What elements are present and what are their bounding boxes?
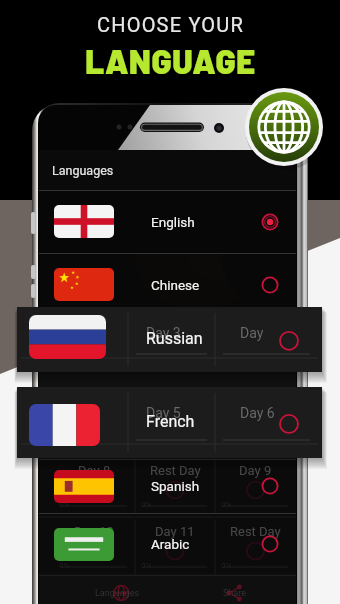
staticText: Day 6 — [239, 402, 272, 417]
staticText: LANGUAGE — [85, 41, 256, 81]
staticText: Day 5 — [159, 402, 192, 417]
staticText: Chinese — [151, 277, 200, 293]
staticText: Day 13 — [74, 585, 114, 600]
staticText: Share — [223, 588, 246, 599]
button[interactable]: Spanish — [39, 459, 296, 513]
staticText: Day 9 — [239, 463, 272, 478]
staticText: Day 8 — [78, 463, 111, 478]
staticText: Languages — [52, 163, 114, 178]
button[interactable]: Russian — [17, 307, 322, 372]
button[interactable]: Chinese — [39, 253, 296, 316]
staticText: 0% — [141, 357, 152, 366]
staticText: 0% — [221, 561, 232, 570]
staticText: Rest Day — [230, 524, 281, 539]
staticText: Languages — [95, 588, 140, 599]
staticText: 0% — [59, 561, 70, 570]
staticText: 0% — [221, 357, 232, 366]
staticText: English — [151, 214, 195, 230]
staticText: Day — [245, 320, 267, 335]
button[interactable]: Arabic — [39, 513, 296, 575]
button[interactable]: French — [17, 387, 322, 458]
staticText: Day 15 — [236, 585, 276, 600]
staticText: Arabic — [151, 536, 190, 552]
staticText: French — [146, 412, 195, 431]
staticText: Russian — [146, 329, 203, 348]
staticText: Spanish — [151, 478, 200, 494]
staticText: Day 5 — [146, 405, 181, 421]
staticText: 0% — [59, 439, 70, 448]
staticText: 0% — [141, 561, 152, 570]
button[interactable]: Language globe — [244, 87, 324, 167]
staticText: Day 3 — [146, 325, 181, 341]
staticText: 0% — [221, 500, 232, 509]
staticText: Day 2 — [78, 320, 111, 335]
staticText: 0% — [141, 439, 152, 448]
staticText: 0% — [221, 439, 232, 448]
staticText: Day 11 — [155, 524, 195, 539]
button[interactable]: English — [39, 190, 296, 253]
staticText: Day 6 — [240, 405, 275, 421]
staticText: Rest Day — [150, 463, 201, 478]
staticText: 0% — [59, 357, 70, 366]
staticText: Day 10 — [74, 524, 114, 539]
staticText: Day 3 — [159, 320, 192, 335]
staticText: 0% — [141, 500, 152, 509]
staticText: Day — [240, 325, 264, 341]
staticText: 0% — [59, 500, 70, 509]
staticText: Day 4 — [78, 402, 111, 417]
staticText: CHOOSE YOUR — [97, 13, 244, 36]
